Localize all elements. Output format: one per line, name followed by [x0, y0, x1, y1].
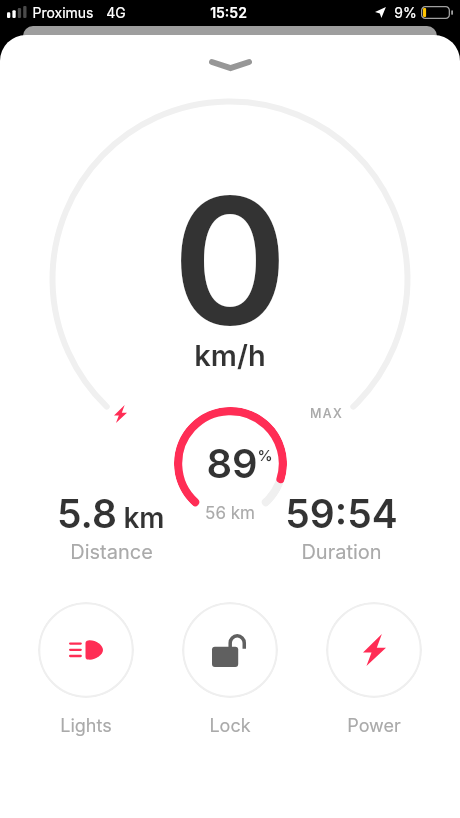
staticText: 15:52 — [210, 4, 247, 21]
button[interactable]: Lights — [38, 602, 134, 698]
staticText: % — [257, 446, 273, 464]
staticText: 0 — [172, 154, 288, 366]
button[interactable]: Battery 89 percent, 56 km range — [174, 407, 287, 520]
staticText: Lights — [60, 715, 112, 737]
button[interactable]: Collapse — [209, 59, 252, 71]
staticText: MAX — [310, 406, 343, 421]
staticText: Distance — [70, 540, 153, 564]
staticText: km — [123, 501, 165, 535]
button[interactable]: Power — [326, 602, 422, 698]
staticText: Lock — [209, 715, 251, 737]
staticText: 4G — [106, 4, 126, 21]
button[interactable]: Lock — [182, 602, 278, 698]
staticText: 89 — [206, 439, 258, 487]
staticText: 5.8 — [57, 490, 117, 537]
staticText: Power — [347, 715, 401, 737]
staticText: km/h — [194, 338, 266, 373]
staticText: 56 km — [205, 503, 255, 524]
staticText: Duration — [301, 540, 382, 564]
staticText: 9% — [394, 4, 417, 21]
staticText: Proximus — [32, 4, 94, 21]
staticText: 59:54 — [285, 490, 398, 537]
